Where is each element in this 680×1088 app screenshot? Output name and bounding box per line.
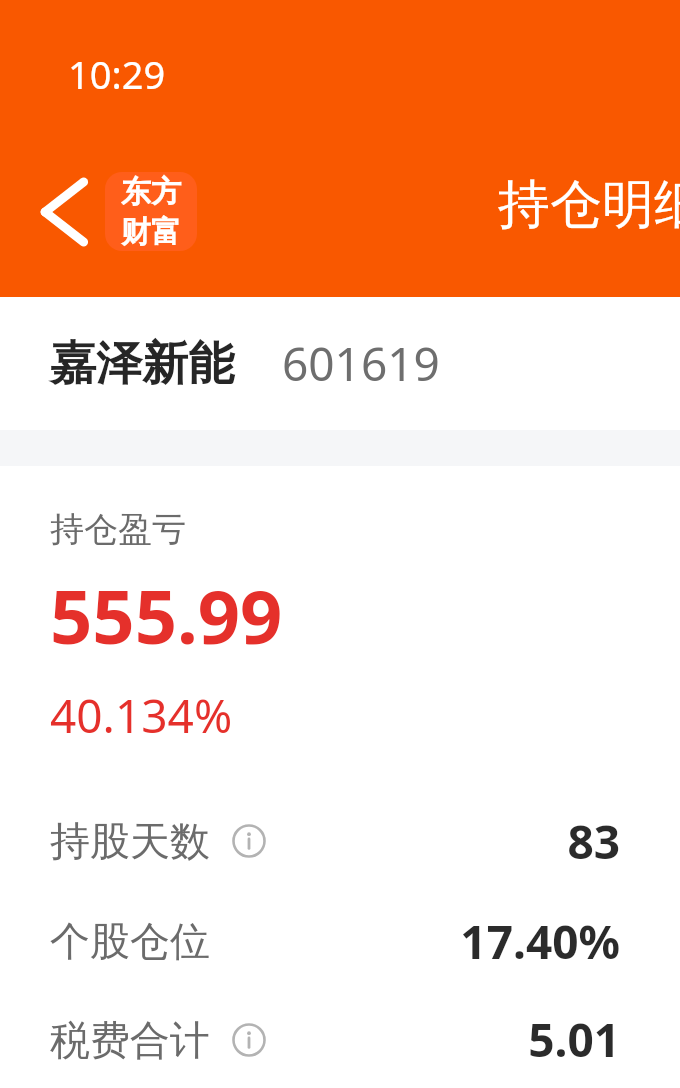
staticText: 持仓盈亏 [50, 508, 186, 551]
staticText: 税费合计 [50, 1015, 210, 1065]
staticText: 持仓明细 [498, 172, 680, 238]
staticText: 601619 [282, 332, 440, 395]
button[interactable]: 个股仓位 [0, 891, 680, 991]
staticText: 个股仓位 [50, 916, 210, 966]
staticText: 83 [567, 810, 620, 873]
button[interactable]: 税费合计 [0, 991, 680, 1088]
staticText: 东方 [121, 173, 181, 211]
staticText: 5.01 [528, 1008, 620, 1071]
staticText: 555.99 [50, 565, 283, 666]
button[interactable]: 东方 [105, 172, 197, 251]
button[interactable]: Back [20, 172, 100, 252]
staticText: 嘉泽新能 [50, 335, 234, 393]
staticText: 10:29 [68, 48, 166, 100]
staticText: 持股天数 [50, 816, 210, 866]
other: More info about 持股天数 [232, 824, 266, 858]
button[interactable]: 嘉泽新能 [0, 297, 680, 430]
staticText: 财富 [121, 213, 181, 251]
staticText: 17.40% [460, 910, 620, 973]
button[interactable]: 持股天数 [0, 791, 680, 891]
other: More info about 税费合计 [232, 1023, 266, 1057]
staticText: 40.134% [50, 684, 233, 747]
